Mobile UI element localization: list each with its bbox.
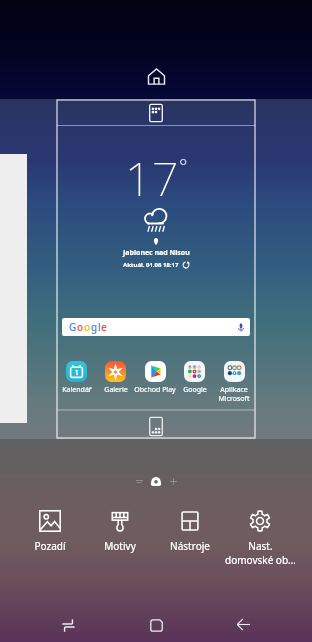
button[interactable]: Add page [164,472,182,490]
staticText: o [84,320,91,334]
staticText: Kalendář [62,385,92,395]
staticText: Nástroje [170,539,210,553]
button[interactable]: Recents [49,609,88,641]
button[interactable]: G [62,318,250,336]
button[interactable]: Home page [147,472,165,490]
staticText: Nast. domovské ob… [225,539,295,567]
staticText: 17 [125,146,179,210]
staticText: o [77,320,84,334]
button[interactable]: Page list [130,472,148,490]
button[interactable] [97,361,135,406]
staticText: Aplikace Microsoft [218,385,250,403]
staticText: Motivy [104,539,136,553]
button[interactable] [136,361,174,406]
staticText: l [98,320,101,334]
staticText: Obchod Play [134,385,176,395]
staticText: ° [179,153,188,180]
button[interactable]: Nast. domovské ob… [225,506,295,567]
staticText: Aktuál. 01.06 18:17 [123,261,179,269]
button[interactable] [215,361,253,406]
staticText: G [69,320,77,334]
staticText: g [91,320,98,334]
button[interactable]: Motivy [85,506,155,553]
button[interactable] [58,361,96,406]
button[interactable]: Apps [145,102,167,124]
button[interactable]: App drawer [145,415,167,437]
button[interactable]: Back [224,608,263,640]
button[interactable]: Home [137,609,176,641]
staticText: Pozadí [34,539,66,553]
staticText: Jablonec nad Nisou [123,248,190,258]
button[interactable]: Nástroje [155,506,225,553]
button[interactable]: Pozadí [15,506,85,553]
button[interactable]: Home screen [144,64,168,88]
staticText: Galerie [104,385,128,395]
button[interactable] [176,361,214,406]
staticText: e [101,320,107,334]
staticText: Google [183,385,207,395]
